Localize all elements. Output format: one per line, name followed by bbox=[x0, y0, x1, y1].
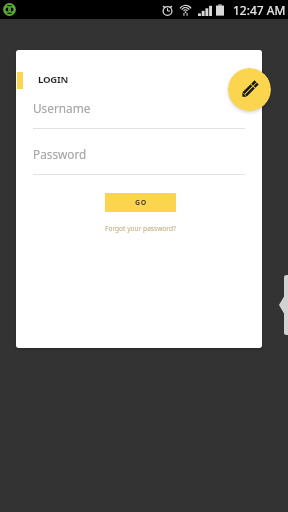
staticText: Username bbox=[33, 100, 91, 116]
button[interactable]: Edit bbox=[228, 68, 271, 111]
staticText: 12:47 AM bbox=[233, 2, 286, 18]
button[interactable]: Password bbox=[33, 146, 245, 180]
button[interactable]: Open menu bbox=[278, 275, 288, 335]
staticText: LOGIN bbox=[38, 73, 68, 86]
staticText: GO bbox=[135, 198, 147, 208]
staticText: Password bbox=[33, 146, 87, 162]
button[interactable]: GO bbox=[105, 193, 176, 212]
button[interactable]: Forgot your password? bbox=[75, 220, 205, 236]
staticText: Forgot your password? bbox=[105, 224, 176, 233]
button[interactable]: Username bbox=[33, 100, 245, 134]
